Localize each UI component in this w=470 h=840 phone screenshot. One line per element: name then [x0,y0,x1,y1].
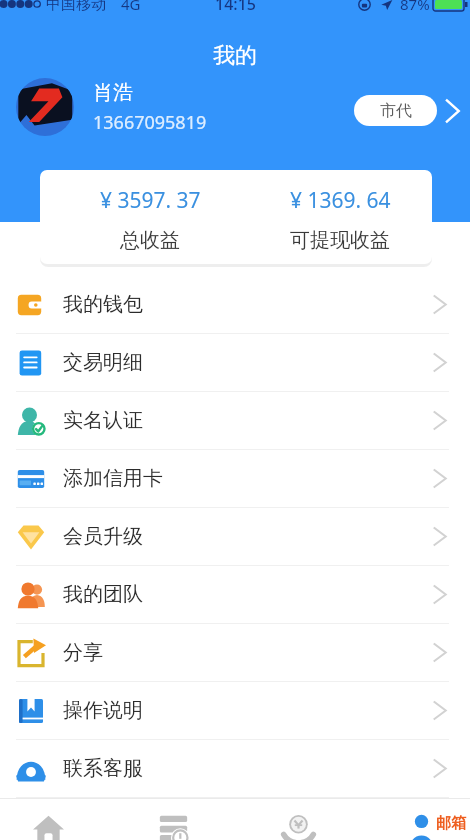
button[interactable]: Orders [133,798,214,840]
staticText: 分享 [63,640,103,665]
button[interactable]: 会员升级 [0,508,470,566]
staticText: 联系客服 [63,756,143,781]
button[interactable]: 添加信用卡 [0,450,470,508]
button[interactable]: Profile avatar [16,78,74,136]
button[interactable]: Mine [381,798,462,840]
button[interactable]: 市代 [354,95,470,126]
button[interactable]: Earnings [258,798,339,840]
staticText: 中国移动 [46,0,106,14]
staticText: 邮箱 [436,814,466,833]
staticText: 肖浩 [93,80,133,105]
staticText: 市代 [380,101,412,121]
staticText: 14:15 [215,0,256,15]
button[interactable]: 我的钱包 [0,276,470,334]
button[interactable]: 联系客服 [0,740,470,798]
staticText: 会员升级 [63,524,143,549]
staticText: 操作说明 [63,698,143,723]
staticText: 交易明细 [63,350,143,375]
staticText: 13667095819 [93,110,207,135]
button[interactable]: 我的团队 [0,566,470,624]
staticText: ¥ 3597. 37 [100,186,201,215]
button[interactable]: 操作说明 [0,682,470,740]
staticText: 总收益 [120,228,180,253]
button[interactable]: ¥ 1369. 64 [242,170,432,264]
button[interactable]: ¥ 3597. 37 [52,170,248,264]
staticText: 添加信用卡 [63,466,163,491]
staticText: 可提现收益 [290,228,390,253]
staticText: 4G [121,0,141,14]
staticText: 我的钱包 [63,292,143,317]
staticText: ¥ 1369. 64 [290,186,391,215]
button[interactable]: 分享 [0,624,470,682]
button[interactable]: 交易明细 [0,334,470,392]
staticText: 87% [400,0,430,14]
button[interactable]: 实名认证 [0,392,470,450]
staticText: 我的团队 [63,582,143,607]
staticText: 我的 [0,42,470,70]
button[interactable]: Home [8,798,89,840]
staticText: 实名认证 [63,408,143,433]
